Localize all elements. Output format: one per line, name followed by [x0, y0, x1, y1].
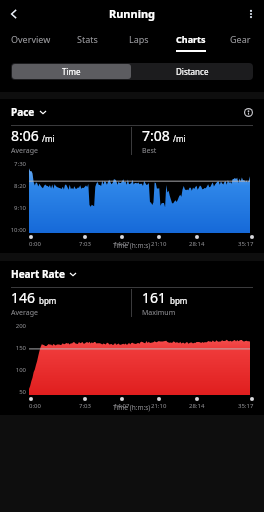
staticText: 0:00: [29, 240, 41, 248]
staticText: 35:17: [238, 240, 254, 248]
button[interactable]: Laps: [113, 27, 165, 58]
staticText: bpm: [170, 295, 188, 306]
staticText: 50: [4, 388, 26, 396]
staticText: Distance: [176, 66, 209, 77]
button[interactable]: Heart Rate: [11, 267, 77, 281]
staticText: Laps: [129, 33, 149, 45]
staticText: 0:00: [29, 402, 41, 410]
staticText: Running: [109, 6, 156, 21]
staticText: 28:14: [189, 402, 205, 410]
staticText: 8:20: [4, 182, 26, 190]
staticText: 7:03: [79, 402, 91, 410]
staticText: Time: [62, 66, 81, 77]
staticText: 21:10: [151, 240, 167, 248]
staticText: 28:14: [189, 240, 205, 248]
staticText: Charts: [176, 33, 206, 45]
staticText: 7:03: [79, 240, 91, 248]
staticText: /mi: [42, 133, 55, 144]
button[interactable]: Stats: [61, 27, 113, 58]
button[interactable]: Overview: [0, 27, 61, 58]
button[interactable]: Info: [240, 104, 256, 120]
staticText: Average: [11, 146, 38, 156]
button[interactable]: Charts: [165, 27, 217, 58]
staticText: 7:08: [142, 126, 170, 145]
staticText: 200: [4, 322, 26, 330]
staticText: 9:10: [4, 204, 26, 212]
staticText: Heart Rate: [11, 267, 65, 281]
staticText: 161: [142, 288, 167, 307]
staticText: Maximum: [142, 308, 176, 318]
button[interactable]: Gear: [217, 27, 264, 58]
staticText: Stats: [77, 33, 98, 45]
staticText: 10:00: [4, 226, 26, 234]
staticText: bpm: [39, 295, 57, 306]
staticText: 146: [11, 288, 36, 307]
staticText: Gear: [230, 33, 251, 45]
staticText: Time (h:m:s): [113, 403, 151, 412]
staticText: 14:07: [114, 402, 130, 410]
staticText: 8:06: [11, 126, 39, 145]
button[interactable]: Back: [0, 0, 27, 27]
staticText: 7:30: [4, 160, 26, 168]
staticText: 14:07: [114, 240, 130, 248]
staticText: Average: [11, 308, 38, 318]
staticText: Pace: [11, 105, 35, 119]
staticText: 21:10: [151, 402, 167, 410]
button[interactable]: Pace: [11, 105, 47, 119]
button[interactable]: Distance: [132, 63, 253, 80]
staticText: Best: [142, 146, 157, 156]
staticText: 100: [4, 366, 26, 374]
staticText: /mi: [173, 133, 186, 144]
button[interactable]: Time: [12, 64, 131, 79]
staticText: Time (h:m:s): [113, 241, 151, 250]
button[interactable]: More options: [237, 0, 264, 27]
staticText: Overview: [11, 33, 51, 45]
staticText: 35:17: [238, 402, 254, 410]
staticText: 150: [4, 344, 26, 352]
